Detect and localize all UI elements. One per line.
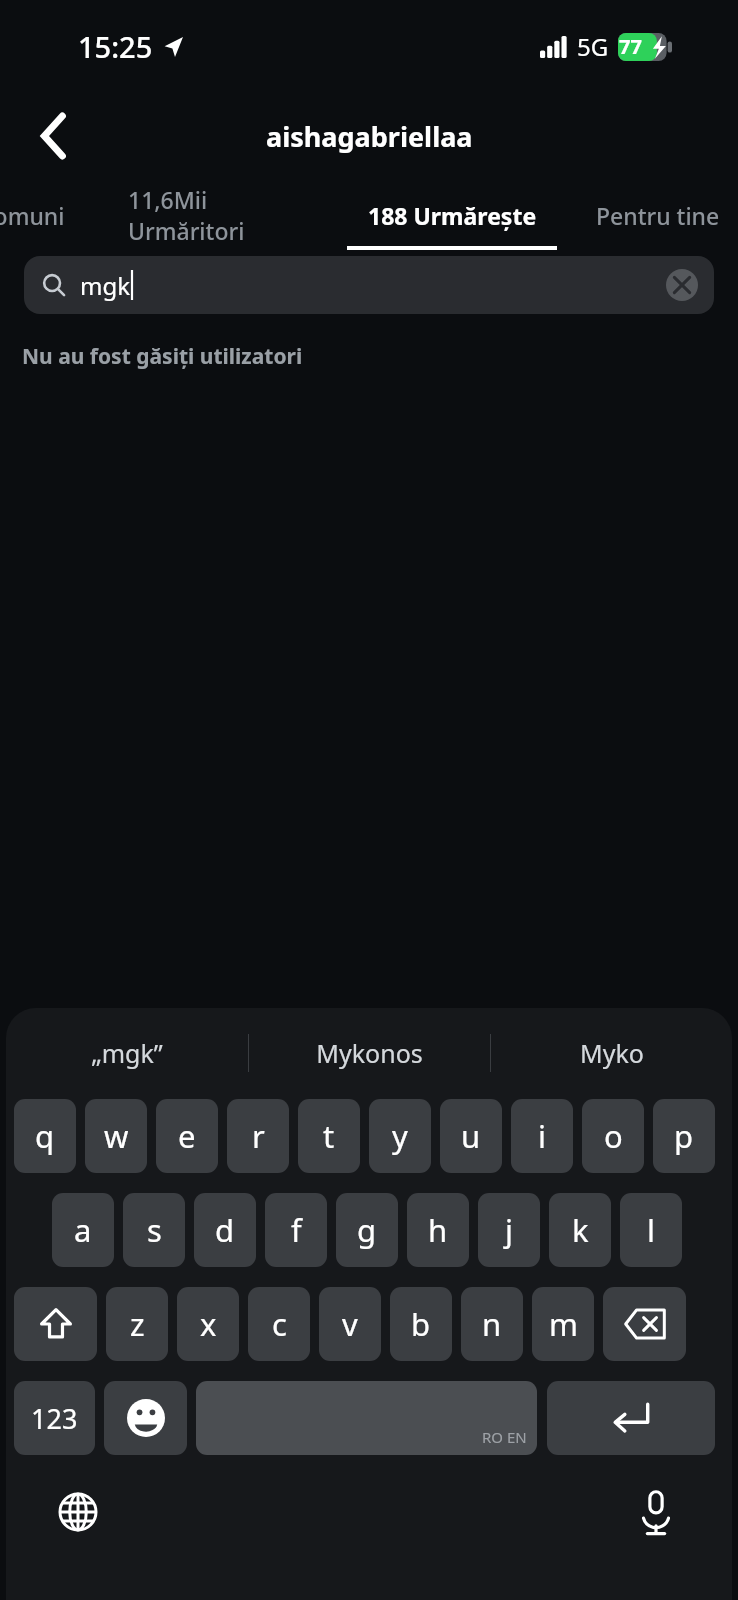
button[interactable]: j xyxy=(478,1193,540,1267)
button[interactable]: q xyxy=(14,1099,76,1173)
staticText: t xyxy=(323,1115,335,1157)
button[interactable]: b xyxy=(390,1287,452,1361)
staticText: Comuni xyxy=(0,200,65,231)
staticText: z xyxy=(130,1303,145,1345)
button[interactable]: s xyxy=(123,1193,185,1267)
staticText: mgk xyxy=(80,269,131,302)
staticText: Nu au fost găsiți utilizatori xyxy=(22,342,303,371)
staticText: u xyxy=(461,1115,481,1157)
staticText: Myko xyxy=(580,1036,644,1070)
staticText: j xyxy=(505,1209,513,1251)
button[interactable]: n xyxy=(461,1287,523,1361)
button[interactable]: x xyxy=(177,1287,239,1361)
button[interactable]: w xyxy=(85,1099,147,1173)
button[interactable]: c xyxy=(248,1287,310,1361)
staticText: l xyxy=(647,1209,655,1251)
staticText: y xyxy=(392,1115,408,1157)
staticText: o xyxy=(604,1115,623,1157)
staticText: 188 Urmărește xyxy=(368,200,537,231)
staticText: d xyxy=(215,1209,235,1251)
staticText: r xyxy=(252,1115,265,1157)
staticText: k xyxy=(572,1209,589,1251)
button[interactable]: 11,6Mii Urmăritori xyxy=(128,180,328,250)
button[interactable]: Space xyxy=(196,1381,537,1455)
button[interactable]: i xyxy=(511,1099,573,1173)
button[interactable]: mgk xyxy=(24,256,714,314)
staticText: b xyxy=(411,1303,431,1345)
staticText: n xyxy=(482,1303,502,1345)
staticText: x xyxy=(200,1303,217,1345)
button[interactable]: Mykonos xyxy=(249,1008,490,1098)
button[interactable]: u xyxy=(440,1099,502,1173)
button[interactable]: e xyxy=(156,1099,218,1173)
button[interactable]: t xyxy=(298,1099,360,1173)
button[interactable]: l xyxy=(620,1193,682,1267)
button[interactable]: Clear search xyxy=(660,263,704,307)
staticText: 5G xyxy=(577,30,609,63)
button[interactable]: Back xyxy=(22,104,86,168)
button[interactable]: z xyxy=(106,1287,168,1361)
button[interactable]: d xyxy=(194,1193,256,1267)
button[interactable]: „mgk” xyxy=(6,1008,248,1098)
button[interactable]: 123 xyxy=(14,1381,95,1455)
button[interactable]: k xyxy=(549,1193,611,1267)
button[interactable]: v xyxy=(319,1287,381,1361)
button[interactable]: y xyxy=(369,1099,431,1173)
staticText: RO EN xyxy=(482,1427,527,1447)
staticText: Mykonos xyxy=(316,1036,423,1070)
button[interactable]: Pentru tine xyxy=(568,180,738,250)
staticText: aishagabriellaa xyxy=(266,118,473,155)
button[interactable]: p xyxy=(653,1099,715,1173)
button[interactable]: Enter xyxy=(547,1381,715,1455)
staticText: Pentru tine xyxy=(596,200,720,231)
staticText: i xyxy=(538,1115,546,1157)
staticText: s xyxy=(147,1209,162,1251)
staticText: g xyxy=(357,1209,377,1251)
button[interactable]: Backspace xyxy=(603,1287,686,1361)
staticText: 123 xyxy=(31,1400,78,1437)
button[interactable]: Voice input xyxy=(626,1482,686,1542)
staticText: h xyxy=(428,1209,448,1251)
staticText: e xyxy=(178,1115,196,1157)
button[interactable]: Emoji xyxy=(104,1381,187,1455)
staticText: q xyxy=(35,1115,55,1157)
button[interactable]: h xyxy=(407,1193,469,1267)
staticText: 15:25 xyxy=(78,27,153,66)
button[interactable]: g xyxy=(336,1193,398,1267)
staticText: p xyxy=(674,1115,694,1157)
staticText: 77 xyxy=(619,33,642,60)
button[interactable]: Change language xyxy=(48,1482,108,1542)
staticText: a xyxy=(74,1209,92,1251)
button[interactable]: f xyxy=(265,1193,327,1267)
button[interactable]: Shift xyxy=(14,1287,97,1361)
button[interactable]: m xyxy=(532,1287,594,1361)
staticText: w xyxy=(104,1115,129,1157)
button[interactable]: Comuni xyxy=(0,180,82,250)
staticText: c xyxy=(272,1303,287,1345)
button[interactable]: o xyxy=(582,1099,644,1173)
button[interactable]: Myko xyxy=(491,1008,732,1098)
staticText: „mgk” xyxy=(91,1036,163,1070)
button[interactable]: a xyxy=(52,1193,114,1267)
staticText: 11,6Mii Urmăritori xyxy=(128,184,328,246)
staticText: v xyxy=(342,1303,358,1345)
staticText: f xyxy=(291,1209,302,1251)
button[interactable]: 188 Urmărește xyxy=(347,180,557,250)
staticText: m xyxy=(549,1303,578,1345)
button[interactable]: r xyxy=(227,1099,289,1173)
